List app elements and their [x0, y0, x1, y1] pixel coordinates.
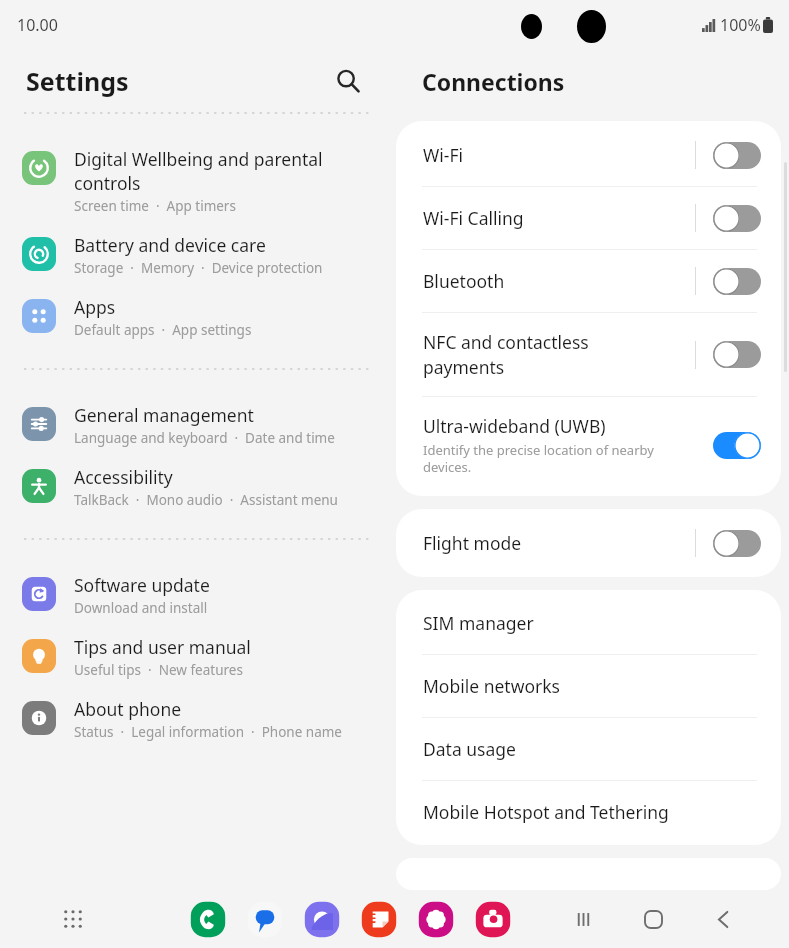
button[interactable]: Search	[329, 62, 367, 100]
staticText: 100%	[720, 14, 761, 36]
button[interactable]: NFC and contactless payments	[396, 313, 781, 396]
staticText: Software update	[74, 573, 210, 597]
button[interactable]: Battery and device care	[0, 224, 395, 286]
button[interactable]: Bluetooth	[396, 250, 781, 312]
staticText: Screen time · App timers	[74, 197, 236, 215]
staticText: Battery and device care	[74, 233, 266, 257]
button[interactable]: Off	[713, 268, 761, 295]
staticText: 10.00	[17, 14, 58, 36]
button[interactable]: Home	[634, 900, 672, 938]
button[interactable]: Wi-Fi	[396, 121, 781, 186]
staticText: Tips and user manual	[74, 635, 251, 659]
staticText: Ultra-wideband (UWB)	[423, 414, 606, 438]
button[interactable]: Software update	[0, 564, 395, 626]
staticText: Identify the precise location of nearby …	[423, 441, 654, 476]
button[interactable]: Flight mode	[396, 509, 781, 577]
button[interactable]: Off	[713, 341, 761, 368]
button[interactable]: Apps	[53, 899, 93, 939]
button[interactable]: GALLERY	[416, 898, 456, 941]
button[interactable]: Wi-Fi Calling	[396, 187, 781, 249]
staticText: Apps	[74, 295, 116, 319]
button[interactable]: Tips and user manual	[0, 626, 395, 688]
staticText: Settings	[26, 64, 129, 98]
button[interactable]: Mobile networks	[396, 655, 781, 717]
staticText: Wi-Fi Calling	[423, 206, 524, 230]
button[interactable]: About phone	[0, 688, 395, 750]
button[interactable]: NOTES	[359, 898, 399, 941]
staticText: Data usage	[423, 737, 516, 761]
staticText: General management	[74, 403, 254, 427]
button[interactable]: SIM manager	[396, 590, 781, 654]
button[interactable]: Data usage	[396, 718, 781, 780]
staticText: Digital Wellbeing and parental controls	[74, 147, 323, 195]
staticText: Connections	[422, 66, 565, 97]
button[interactable]: General management	[0, 394, 395, 456]
button[interactable]: Accessibility	[0, 456, 395, 518]
button[interactable]: Mobile Hotspot and Tethering	[396, 781, 781, 845]
staticText: Accessibility	[74, 465, 173, 489]
button[interactable]: Recents	[564, 900, 602, 938]
button[interactable]: Digital Wellbeing and parental controls	[0, 138, 395, 224]
staticText: About phone	[74, 697, 182, 721]
staticText: Language and keyboard · Date and time	[74, 429, 335, 447]
staticText: Default apps · App settings	[74, 321, 252, 339]
button[interactable]: Ultra-wideband (UWB)	[396, 397, 781, 496]
button[interactable]: MESSAGES	[245, 898, 285, 941]
staticText: Bluetooth	[423, 269, 505, 293]
button[interactable]: Apps	[0, 286, 395, 348]
staticText: Flight mode	[423, 531, 522, 555]
staticText: Status · Legal information · Phone name	[74, 723, 342, 741]
staticText: Download and install	[74, 599, 208, 617]
button[interactable]: On	[713, 432, 761, 459]
button[interactable]: Off	[713, 205, 761, 232]
staticText: NFC and contactless payments	[423, 330, 589, 379]
staticText: SIM manager	[423, 611, 534, 635]
staticText: Wi-Fi	[423, 143, 464, 167]
staticText: Useful tips · New features	[74, 661, 243, 679]
staticText: Mobile Hotspot and Tethering	[423, 800, 669, 824]
staticText: Mobile networks	[423, 674, 560, 698]
button[interactable]: PHONE	[188, 898, 228, 941]
button[interactable]: INTERNET	[302, 898, 342, 941]
button[interactable]: Off	[713, 142, 761, 169]
button[interactable]: Back	[704, 900, 742, 938]
staticText: Storage · Memory · Device protection	[74, 259, 323, 277]
button[interactable]: CAMERA	[473, 898, 513, 941]
staticText: TalkBack · Mono audio · Assistant menu	[74, 491, 338, 509]
button[interactable]: Off	[713, 530, 761, 557]
